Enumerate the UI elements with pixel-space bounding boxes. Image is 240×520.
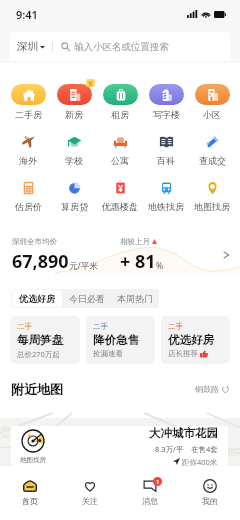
staticText: 距你400米 (182, 457, 218, 466)
staticText: 附近地图 (11, 381, 63, 397)
staticText: 今日必看 (69, 293, 105, 304)
button[interactable]: 深圳 (10, 32, 52, 61)
staticText: 店长推荐 (168, 349, 198, 358)
button[interactable]: 估房价 (5, 181, 51, 212)
staticText: % (156, 260, 164, 272)
button[interactable]: 百科 (143, 135, 189, 166)
staticText: 租房 (111, 109, 129, 120)
button[interactable]: Search (53, 32, 230, 61)
staticText: 元/平米 (69, 260, 98, 272)
button[interactable]: 地图找房 (11, 426, 228, 466)
button[interactable]: 算房贷 (51, 181, 97, 212)
staticText: 二手房 (15, 109, 42, 120)
button[interactable]: 公寓 (97, 135, 143, 166)
staticText: 地图找房 (20, 456, 46, 464)
staticText: 写字楼 (153, 109, 180, 120)
staticText: 算房贷 (61, 201, 88, 212)
staticText: 公寓 (111, 155, 129, 166)
button[interactable]: 首页 (0, 466, 60, 520)
staticText: 新房 (65, 109, 83, 120)
button[interactable]: 海外 (5, 135, 51, 166)
staticText: 二手 (168, 322, 183, 331)
staticText: 二手 (93, 322, 108, 331)
button[interactable]: 优选好房 (12, 290, 62, 307)
button[interactable]: 1 (120, 466, 180, 520)
button[interactable]: 地铁找房 (143, 181, 189, 212)
staticText: 在售4套 (191, 444, 218, 454)
staticText: 优选好房 (168, 333, 214, 347)
staticText: 学校 (65, 155, 83, 166)
staticText: 我的 (202, 496, 218, 506)
staticText: 大冲城市花园 (149, 426, 218, 440)
button[interactable]: 租房 (97, 84, 143, 120)
staticText: 输入小区名或位置搜索 (74, 41, 169, 53)
button[interactable]: 二手 (161, 316, 230, 364)
staticText: 首页 (22, 496, 38, 506)
staticText: 小区 (203, 109, 221, 120)
staticText: 优选好房 (19, 293, 55, 304)
staticText: 铜鼓路 (195, 384, 219, 394)
staticText: 优 (88, 80, 93, 86)
staticText: 每周笋盘 (17, 333, 63, 347)
button[interactable]: 关注 (60, 466, 120, 520)
button[interactable]: 学校 (51, 135, 97, 166)
staticText: 8.3万/平 (155, 444, 184, 454)
staticText: 地铁找房 (148, 201, 184, 212)
button[interactable]: 铜鼓路 (195, 384, 229, 394)
button[interactable]: 查成交 (189, 135, 235, 166)
staticText: 9:41 (16, 7, 38, 22)
staticText: 优惠楼盘 (102, 201, 138, 212)
staticText: 海外 (19, 155, 37, 166)
staticText: 降价急售 (93, 333, 139, 347)
button[interactable]: 地图找房 (189, 181, 235, 212)
staticText: 相较上月 (120, 237, 150, 246)
button[interactable]: 优 (51, 84, 97, 120)
button[interactable]: 今日必看 (63, 289, 111, 308)
button[interactable]: 优惠楼盘 (97, 181, 143, 212)
button[interactable]: 二手 (86, 316, 155, 364)
button[interactable]: 二手 (10, 316, 80, 364)
staticText: 关注 (82, 496, 98, 506)
button[interactable]: 深圳全市均价 (0, 234, 240, 276)
button[interactable]: 二手房 (5, 84, 51, 120)
button[interactable]: 写字楼 (143, 84, 189, 120)
staticText: 捡漏速看 (93, 349, 123, 358)
staticText: + 81 (120, 249, 156, 274)
staticText: 67,890 (12, 249, 69, 274)
other: Refresh (222, 386, 229, 393)
button[interactable]: 我的 (180, 466, 240, 520)
staticText: 本周热门 (117, 293, 153, 304)
other: Search (61, 42, 70, 51)
staticText: 地图找房 (194, 201, 230, 212)
button[interactable]: 本周热门 (111, 289, 159, 308)
staticText: 深圳 (17, 40, 38, 53)
staticText: 二手 (17, 322, 32, 331)
staticText: 估房价 (15, 201, 42, 212)
staticText: 深圳全市均价 (12, 237, 57, 246)
staticText: 查成交 (199, 155, 226, 166)
staticText: 总价270万起 (17, 349, 60, 359)
staticText: 1 (156, 478, 160, 486)
staticText: 百科 (157, 155, 175, 166)
button[interactable]: 小区 (189, 84, 235, 120)
staticText: 消息 (142, 496, 158, 506)
